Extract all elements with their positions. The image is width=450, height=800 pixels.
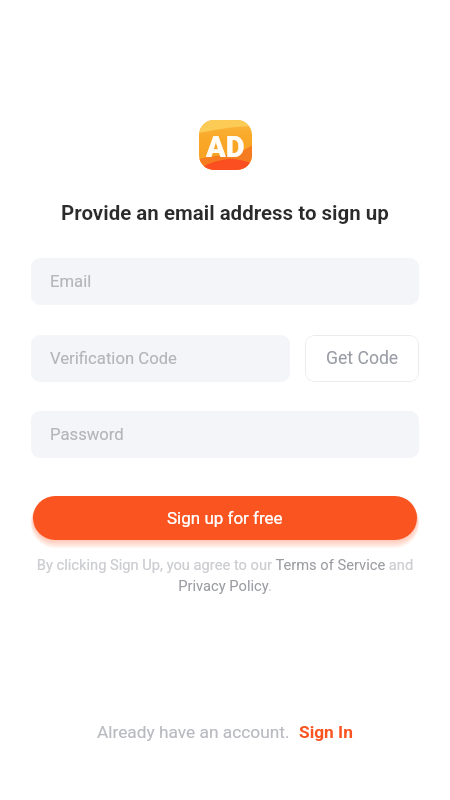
button[interactable]: Verification Code bbox=[31, 335, 290, 382]
staticText: Verification Code bbox=[50, 349, 177, 369]
staticText: By clicking Sign Up, you agree to our Te… bbox=[33, 556, 417, 595]
button[interactable]: Get Code bbox=[305, 335, 419, 382]
staticText: Password bbox=[50, 425, 124, 445]
staticText: AD bbox=[206, 130, 245, 164]
button[interactable]: Sign In bbox=[299, 722, 353, 742]
staticText: Already have an account. bbox=[97, 722, 290, 742]
staticText: Get Code bbox=[326, 348, 399, 369]
staticText: Sign up for free bbox=[167, 508, 283, 528]
staticText: Email bbox=[50, 272, 92, 292]
staticText: Provide an email address to sign up bbox=[61, 201, 389, 225]
staticText: Sign In bbox=[299, 722, 353, 742]
button[interactable]: Email bbox=[31, 258, 419, 305]
button[interactable]: Sign up for free bbox=[33, 496, 417, 540]
button[interactable]: Password bbox=[31, 411, 419, 458]
